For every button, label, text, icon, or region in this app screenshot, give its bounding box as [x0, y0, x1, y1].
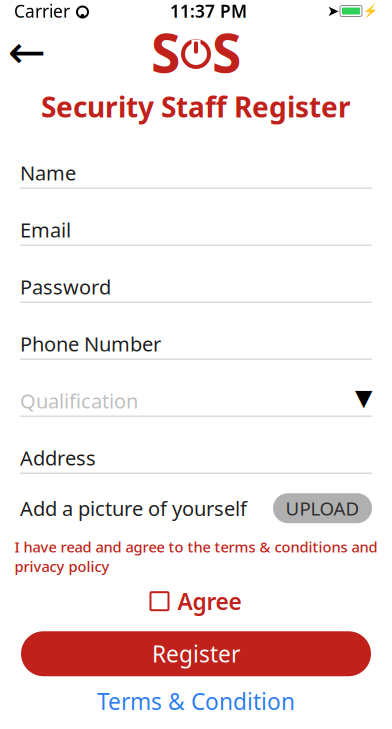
staticText: I have read and agree to the terms & con…: [14, 537, 377, 576]
staticText: Email: [20, 216, 71, 243]
staticText: S: [212, 17, 241, 87]
button[interactable]: Agree: [144, 582, 247, 620]
button[interactable]: UPLOAD: [273, 493, 372, 523]
staticText: ▼: [355, 385, 372, 410]
staticText: 11:37 PM: [170, 0, 247, 22]
staticText: Phone Number: [20, 330, 161, 357]
staticText: Password: [20, 273, 111, 300]
staticText: Qualification: [20, 387, 138, 414]
staticText: ←: [8, 26, 46, 78]
staticText: Security Staff Register: [41, 88, 351, 125]
staticText: S: [151, 17, 180, 87]
staticText: [70, 0, 75, 22]
staticText: Address: [20, 444, 96, 471]
staticText: UPLOAD: [285, 496, 359, 521]
staticText: Agree: [177, 586, 241, 616]
button[interactable]: Terms & Condition: [89, 682, 303, 720]
staticText: Name: [20, 159, 76, 186]
staticText: Carrier: [14, 0, 70, 22]
button[interactable]: Back: [0, 30, 54, 74]
staticText: ⚡: [363, 4, 378, 18]
staticText: ➤: [327, 3, 339, 19]
staticText: Register: [152, 639, 240, 669]
staticText: Add a picture of yourself: [20, 495, 247, 521]
button[interactable]: Register: [21, 631, 371, 676]
staticText: Terms & Condition: [97, 686, 295, 716]
